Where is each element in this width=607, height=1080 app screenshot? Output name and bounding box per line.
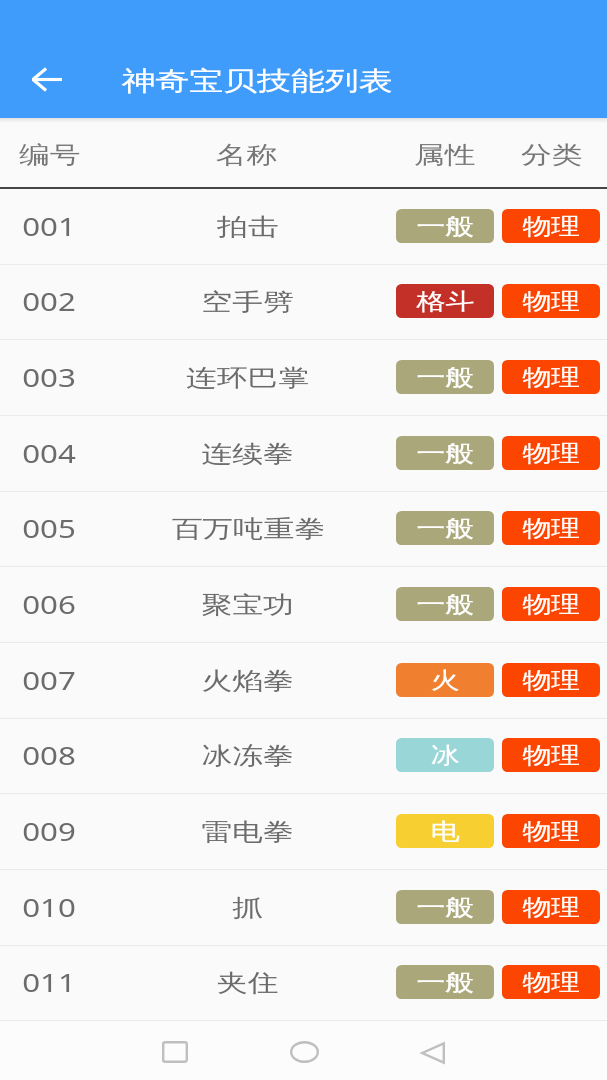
button[interactable]: 011 [0,945,607,1021]
button[interactable]: Recents [147,1024,203,1080]
staticText: 神奇宝贝技能列表 [121,65,394,98]
staticText: 一般 [416,590,474,618]
staticText: 格斗 [416,287,474,315]
button[interactable]: 006 [0,567,607,643]
button[interactable]: 005 [0,491,607,567]
staticText: 冰冻拳 [202,741,294,771]
staticText: 物理 [522,363,581,391]
button[interactable]: 002 [0,264,607,340]
staticText: 009 [22,814,76,849]
staticText: 002 [22,284,76,319]
staticText: 属性 [414,140,476,170]
staticText: 一般 [416,363,474,391]
button[interactable]: 008 [0,718,607,794]
staticText: 电 [431,817,460,845]
staticText: 空手劈 [202,287,294,317]
staticText: 冰 [431,741,460,769]
button[interactable]: 001 [0,189,607,265]
staticText: 拍击 [217,212,279,242]
staticText: 一般 [416,514,474,542]
staticText: 物理 [522,666,581,694]
button[interactable]: 007 [0,643,607,719]
staticText: 名称 [216,140,278,170]
button[interactable]: Back [405,1025,461,1080]
staticText: 一般 [416,439,474,467]
staticText: 004 [22,436,76,471]
staticText: 008 [22,738,76,773]
staticText: 物理 [522,893,581,921]
staticText: 连续拳 [202,439,294,469]
staticText: 聚宝功 [202,590,294,620]
staticText: 010 [22,890,76,925]
staticText: 007 [22,663,76,698]
staticText: 夹住 [217,968,279,998]
staticText: 005 [22,511,76,546]
staticText: 物理 [522,287,581,315]
staticText: 火焰拳 [202,666,294,696]
staticText: 火 [431,666,460,694]
staticText: 物理 [522,590,581,618]
staticText: 001 [22,209,76,244]
staticText: 物理 [522,741,581,769]
button[interactable]: Back [21,55,73,103]
button[interactable]: Home [276,1024,332,1080]
staticText: 006 [22,587,76,622]
staticText: 物理 [522,514,581,542]
staticText: 抓 [232,893,263,923]
staticText: 一般 [416,212,474,240]
staticText: 百万吨重拳 [172,514,325,544]
staticText: 物理 [522,968,581,996]
button[interactable]: 004 [0,416,607,492]
button[interactable]: 009 [0,794,607,870]
staticText: 分类 [521,140,583,170]
staticText: 连环巴掌 [186,363,310,393]
button[interactable]: 003 [0,340,607,416]
button[interactable]: 010 [0,870,607,946]
staticText: 雷电拳 [202,817,294,847]
staticText: 物理 [522,212,581,240]
staticText: 物理 [522,817,581,845]
staticText: 011 [22,965,76,1000]
staticText: 一般 [416,968,474,996]
staticText: 物理 [522,439,581,467]
staticText: 一般 [416,893,474,921]
staticText: 003 [22,360,76,395]
staticText: 编号 [19,140,81,170]
